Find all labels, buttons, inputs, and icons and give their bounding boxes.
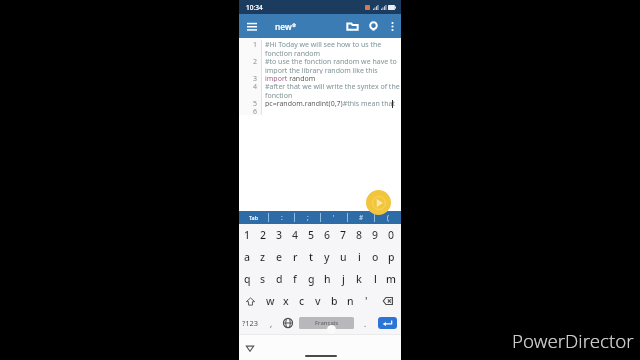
button[interactable]: . bbox=[357, 312, 374, 334]
staticText: u bbox=[340, 250, 347, 264]
staticText: Tab bbox=[249, 214, 259, 221]
staticText: 1 bbox=[239, 40, 257, 50]
staticText: : bbox=[281, 213, 283, 222]
button[interactable]: g bbox=[303, 268, 319, 290]
button[interactable]: # bbox=[348, 211, 374, 224]
staticText: e bbox=[276, 250, 283, 264]
button[interactable]: 7 bbox=[335, 224, 351, 246]
staticText: Français bbox=[315, 319, 339, 327]
button[interactable]: Open folder bbox=[342, 14, 363, 38]
button[interactable]: r bbox=[287, 246, 303, 268]
button[interactable]: Hint bbox=[363, 14, 384, 38]
button[interactable]: k bbox=[351, 268, 367, 290]
button[interactable]: q bbox=[239, 268, 255, 290]
staticText: import random bbox=[265, 74, 316, 82]
staticText: j bbox=[342, 272, 345, 286]
button[interactable]: Hide keyboard bbox=[244, 342, 256, 354]
button[interactable]: Enter bbox=[378, 317, 397, 329]
button[interactable]: d bbox=[271, 268, 287, 290]
button[interactable]: u bbox=[335, 246, 351, 268]
staticText: 5 bbox=[308, 228, 315, 242]
button[interactable]: Change language bbox=[280, 312, 296, 334]
button[interactable]: 6 bbox=[319, 224, 335, 246]
button[interactable]: p bbox=[383, 246, 399, 268]
staticText: 3 bbox=[239, 74, 257, 82]
button[interactable]: m bbox=[383, 268, 399, 290]
staticText: 5 bbox=[239, 99, 257, 107]
staticText: g bbox=[308, 272, 315, 286]
button[interactable]: v bbox=[310, 290, 326, 312]
button[interactable]: e bbox=[271, 246, 287, 268]
staticText: . bbox=[364, 318, 367, 329]
staticText: q bbox=[244, 272, 251, 286]
staticText: v bbox=[315, 294, 321, 308]
button[interactable]: o bbox=[367, 246, 383, 268]
button[interactable]: c bbox=[294, 290, 310, 312]
button[interactable]: b bbox=[326, 290, 342, 312]
button[interactable]: ' bbox=[321, 211, 347, 224]
button[interactable]: 3 bbox=[271, 224, 287, 246]
button[interactable]: ?123 bbox=[239, 312, 262, 334]
staticText: 10:34 bbox=[246, 3, 263, 12]
staticText: #Hi Today we will see how to us the fonc… bbox=[265, 40, 400, 57]
staticText: x bbox=[283, 294, 289, 308]
staticText: 6 bbox=[239, 107, 257, 115]
button[interactable]: 0 bbox=[383, 224, 399, 246]
staticText: k bbox=[356, 272, 362, 286]
button[interactable]: Backspace bbox=[374, 290, 401, 312]
button[interactable]: Français bbox=[299, 317, 354, 329]
button[interactable]: , bbox=[262, 312, 280, 334]
staticText: ( bbox=[387, 213, 389, 222]
staticText: a bbox=[244, 250, 251, 264]
button[interactable]: n bbox=[342, 290, 358, 312]
button[interactable]: : bbox=[269, 211, 294, 224]
staticText: PowerDirector bbox=[512, 328, 634, 353]
staticText: new* bbox=[275, 21, 297, 32]
button[interactable]: 1 bbox=[239, 224, 255, 246]
staticText: # bbox=[359, 213, 364, 222]
staticText: , bbox=[270, 318, 273, 329]
button[interactable]: z bbox=[255, 246, 271, 268]
staticText: ; bbox=[307, 213, 309, 222]
staticText: ?123 bbox=[242, 318, 259, 328]
button[interactable]: ; bbox=[295, 211, 320, 224]
staticText: 6 bbox=[324, 228, 331, 242]
button[interactable]: t bbox=[303, 246, 319, 268]
button[interactable]: a bbox=[239, 246, 255, 268]
staticText: 2 bbox=[260, 228, 267, 242]
staticText: ' bbox=[333, 213, 335, 222]
button[interactable]: Tab bbox=[239, 211, 268, 224]
staticText: 3 bbox=[276, 228, 283, 242]
button[interactable]: x bbox=[278, 290, 294, 312]
staticText: p bbox=[388, 250, 395, 264]
button[interactable]: 4 bbox=[287, 224, 303, 246]
staticText: r bbox=[293, 250, 298, 264]
button[interactable]: i bbox=[351, 246, 367, 268]
staticText: o bbox=[372, 250, 379, 264]
staticText: f bbox=[293, 272, 297, 286]
button[interactable]: Run bbox=[366, 190, 391, 215]
staticText: d bbox=[276, 272, 283, 286]
button[interactable]: 2 bbox=[255, 224, 271, 246]
staticText: w bbox=[266, 294, 275, 308]
button[interactable]: 5 bbox=[303, 224, 319, 246]
button[interactable]: 8 bbox=[351, 224, 367, 246]
button[interactable]: s bbox=[255, 268, 271, 290]
button[interactable]: l bbox=[367, 268, 383, 290]
button[interactable]: Shift bbox=[239, 290, 262, 312]
staticText: s bbox=[260, 272, 266, 286]
button[interactable]: f bbox=[287, 268, 303, 290]
button[interactable]: 9 bbox=[367, 224, 383, 246]
button[interactable]: h bbox=[319, 268, 335, 290]
staticText: #to use the fonction random we have to i… bbox=[265, 57, 400, 74]
button[interactable]: ( bbox=[375, 211, 401, 224]
button[interactable]: More options bbox=[384, 14, 401, 38]
button[interactable]: y bbox=[319, 246, 335, 268]
button[interactable]: ' bbox=[358, 290, 374, 312]
button[interactable]: w bbox=[262, 290, 278, 312]
button[interactable]: Menu bbox=[239, 14, 264, 38]
button[interactable]: j bbox=[335, 268, 351, 290]
staticText: 4 bbox=[239, 82, 257, 92]
staticText: 4 bbox=[292, 228, 299, 242]
staticText: 2 bbox=[239, 57, 257, 67]
